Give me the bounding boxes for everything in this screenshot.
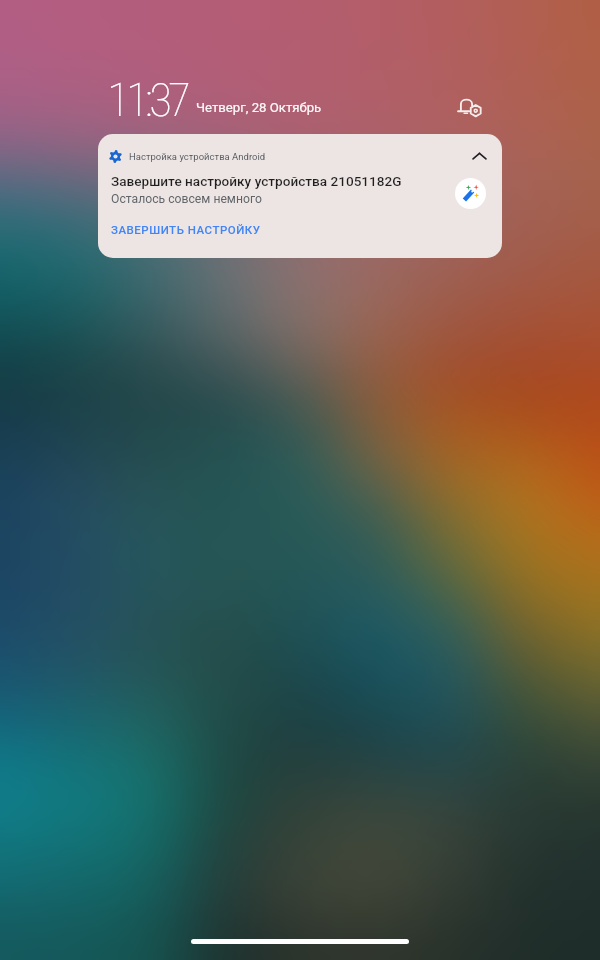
- staticText: Завершите настройку устройства 21051182G: [111, 173, 402, 189]
- staticText: 11:37: [107, 72, 188, 127]
- staticText: Осталось совсем немного: [111, 192, 262, 206]
- button[interactable]: Настройка устройства Android: [98, 134, 502, 258]
- staticText: Четверг, 28 Октябрь: [196, 100, 322, 115]
- button[interactable]: Collapse notification: [467, 144, 491, 168]
- staticText: ЗАВЕРШИТЬ НАСТРОЙКУ: [111, 223, 261, 236]
- staticText: Настройка устройства Android: [129, 151, 266, 162]
- button[interactable]: Notification settings: [452, 88, 488, 124]
- button[interactable]: ЗАВЕРШИТЬ НАСТРОЙКУ: [110, 222, 262, 237]
